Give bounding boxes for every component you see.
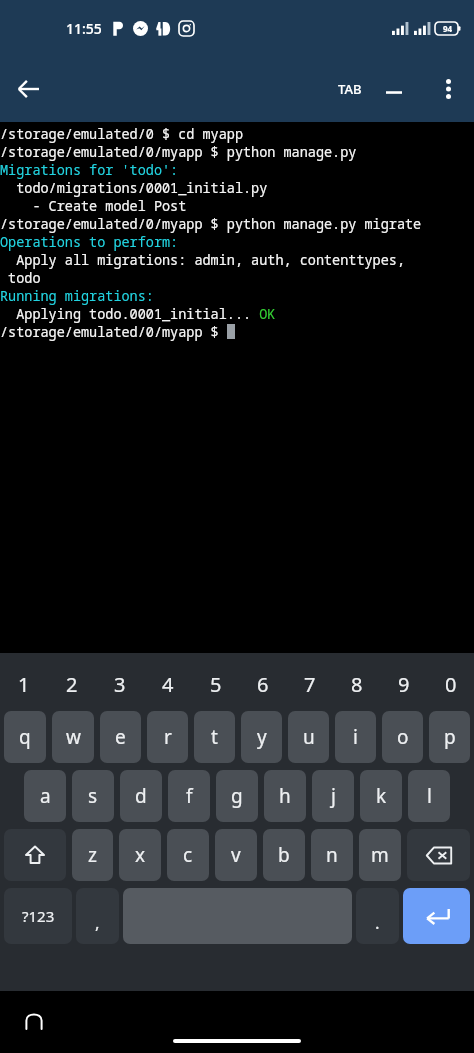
- staticText: 0: [445, 671, 457, 698]
- button[interactable]: Shift: [4, 829, 66, 881]
- staticText: 94: [443, 23, 453, 34]
- button[interactable]: o: [382, 711, 423, 763]
- button[interactable]: Minimize: [366, 61, 422, 117]
- button[interactable]: Enter: [403, 888, 470, 944]
- staticText: r: [164, 724, 172, 750]
- staticText: l: [427, 783, 432, 809]
- staticText: todo: [0, 269, 41, 287]
- button[interactable]: k: [360, 770, 402, 822]
- button[interactable]: 4: [144, 661, 192, 707]
- staticText: b: [278, 842, 290, 868]
- staticText: x: [135, 842, 146, 868]
- staticText: c: [183, 842, 193, 868]
- staticText: 1: [18, 671, 30, 698]
- staticText: 6: [257, 671, 269, 698]
- staticText: - Create model Post: [0, 197, 187, 215]
- button[interactable]: m: [359, 829, 401, 881]
- button[interactable]: t: [194, 711, 235, 763]
- staticText: h: [279, 783, 291, 809]
- staticText: k: [376, 783, 387, 809]
- button[interactable]: /storage/emulated/0 $ cd myapp: [0, 122, 474, 653]
- staticText: 3: [114, 671, 126, 698]
- staticText: /storage/emulated/0/myapp $ python manag…: [0, 143, 474, 161]
- staticText: /storage/emulated/0 $ cd myapp: [0, 125, 243, 143]
- button[interactable]: 3: [96, 661, 144, 707]
- button[interactable]: 0: [427, 661, 474, 707]
- staticText: 9: [398, 671, 410, 698]
- staticText: 2: [66, 671, 78, 698]
- button[interactable]: c: [167, 829, 209, 881]
- staticText: todo/migrations/0001_initial.py: [0, 179, 268, 197]
- staticText: a: [40, 783, 51, 809]
- staticText: q: [19, 724, 31, 750]
- staticText: s: [88, 783, 98, 809]
- button[interactable]: 9: [380, 661, 427, 707]
- button[interactable]: i: [335, 711, 376, 763]
- staticText: ,: [95, 911, 100, 934]
- button[interactable]: j: [312, 770, 354, 822]
- button[interactable]: a: [24, 770, 66, 822]
- staticText: e: [115, 724, 126, 750]
- staticText: /storage/emulated/0/myapp $ python manag…: [0, 215, 422, 233]
- button[interactable]: TAB: [338, 80, 362, 98]
- button[interactable]: 1: [0, 661, 48, 707]
- staticText: d: [135, 783, 147, 809]
- button[interactable]: ?123: [4, 888, 72, 944]
- staticText: /storage/emulated/0/myapp $: [0, 323, 227, 341]
- button[interactable]: Hide keyboard: [16, 1004, 52, 1040]
- staticText: n: [326, 842, 338, 868]
- button[interactable]: 5: [192, 661, 239, 707]
- button[interactable]: b: [263, 829, 305, 881]
- staticText: p: [444, 724, 456, 750]
- staticText: TAB: [338, 80, 362, 98]
- button[interactable]: z: [72, 829, 113, 881]
- button[interactable]: l: [408, 770, 450, 822]
- staticText: ?123: [22, 906, 55, 926]
- staticText: .: [375, 911, 380, 934]
- staticText: f: [186, 783, 193, 809]
- staticText: 11:55: [66, 19, 102, 38]
- button[interactable]: 8: [333, 661, 380, 707]
- button[interactable]: 6: [239, 661, 286, 707]
- staticText: 7: [304, 671, 316, 698]
- button[interactable]: y: [241, 711, 282, 763]
- button[interactable]: e: [100, 711, 141, 763]
- staticText: i: [353, 724, 358, 750]
- button[interactable]: x: [119, 829, 161, 881]
- staticText: o: [397, 724, 409, 750]
- button[interactable]: w: [52, 711, 94, 763]
- staticText: u: [303, 724, 315, 750]
- button[interactable]: 7: [286, 661, 333, 707]
- button[interactable]: d: [120, 770, 162, 822]
- staticText: z: [88, 842, 97, 868]
- button[interactable]: ,: [76, 888, 119, 944]
- staticText: m: [371, 842, 389, 868]
- button[interactable]: f: [168, 770, 210, 822]
- staticText: 8: [351, 671, 363, 698]
- staticText: Applying todo.0001_initial... OK: [0, 305, 276, 323]
- button[interactable]: g: [216, 770, 258, 822]
- button[interactable]: n: [311, 829, 353, 881]
- button[interactable]: h: [264, 770, 306, 822]
- button[interactable]: s: [72, 770, 114, 822]
- staticText: t: [211, 724, 218, 750]
- button[interactable]: p: [429, 711, 470, 763]
- staticText: g: [231, 783, 243, 809]
- staticText: 4: [162, 671, 174, 698]
- staticText: y: [257, 724, 267, 750]
- staticText: j: [331, 783, 336, 809]
- button[interactable]: More options: [422, 63, 474, 115]
- button[interactable]: v: [215, 829, 257, 881]
- button[interactable]: q: [4, 711, 46, 763]
- button[interactable]: r: [147, 711, 188, 763]
- staticText: Migrations for 'todo':: [0, 161, 179, 179]
- button[interactable]: Backspace: [407, 829, 470, 881]
- button[interactable]: Back: [0, 61, 56, 117]
- button[interactable]: 2: [48, 661, 96, 707]
- button[interactable]: u: [288, 711, 329, 763]
- staticText: 5: [210, 671, 222, 698]
- staticText: Operations to perform:: [0, 233, 179, 251]
- staticText: v: [231, 842, 241, 868]
- button[interactable]: .: [356, 888, 399, 944]
